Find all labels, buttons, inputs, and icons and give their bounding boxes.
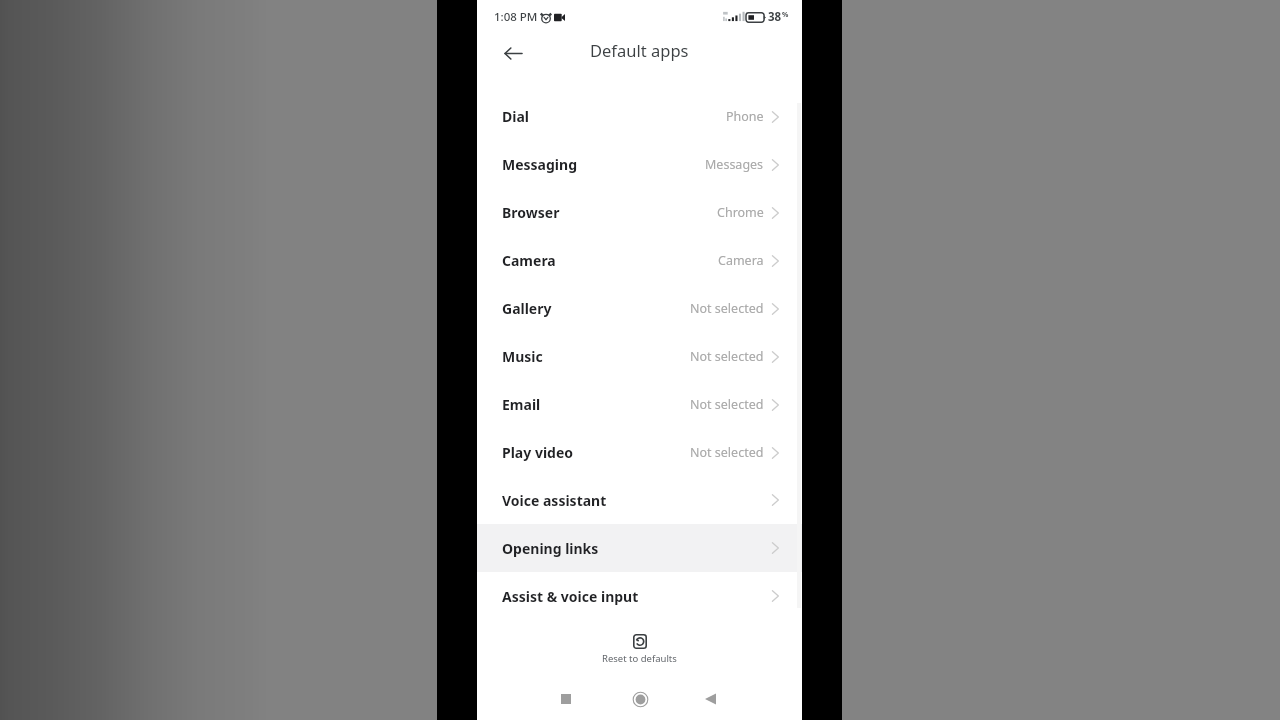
button[interactable]: Recents [551, 684, 581, 714]
button[interactable]: Back [695, 684, 725, 714]
staticText: Reset to defaults [602, 652, 677, 665]
staticText: Not selected [690, 300, 764, 317]
staticText: % [782, 10, 789, 20]
staticText: Not selected [690, 444, 764, 461]
button[interactable]: Camera [477, 236, 802, 284]
staticText: Email [502, 395, 541, 414]
staticText: Play video [502, 443, 574, 462]
button[interactable]: Gallery [477, 284, 802, 332]
button[interactable]: Opening links [477, 524, 802, 572]
staticText: Default apps [590, 39, 689, 61]
staticText: Assist & voice input [502, 587, 639, 606]
button[interactable]: Back [500, 40, 526, 66]
staticText: 1:08 PM [494, 9, 538, 25]
staticText: Browser [502, 203, 560, 222]
button[interactable]: Browser [477, 188, 802, 236]
button[interactable]: Music [477, 332, 802, 380]
button[interactable]: Messaging [477, 140, 802, 188]
button[interactable]: Voice assistant [477, 476, 802, 524]
button[interactable]: Reset to defaults [477, 634, 802, 665]
staticText: Messages [705, 156, 764, 173]
button[interactable]: Home [625, 684, 655, 714]
staticText: Voice assistant [502, 491, 607, 510]
button[interactable]: Assist & voice input [477, 572, 802, 620]
staticText: Not selected [690, 348, 764, 365]
staticText: Opening links [502, 539, 599, 558]
staticText: Messaging [502, 155, 577, 174]
button[interactable]: Play video [477, 428, 802, 476]
staticText: Music [502, 347, 543, 366]
staticText: Not selected [690, 396, 764, 413]
staticText: Phone [726, 108, 764, 125]
staticText: Gallery [502, 299, 552, 318]
staticText: Camera [718, 252, 764, 269]
staticText: 38 [768, 9, 782, 25]
staticText: Camera [502, 251, 556, 270]
button[interactable]: Email [477, 380, 802, 428]
staticText: Dial [502, 107, 529, 126]
button[interactable]: Dial [477, 92, 802, 140]
staticText: Chrome [717, 204, 764, 221]
